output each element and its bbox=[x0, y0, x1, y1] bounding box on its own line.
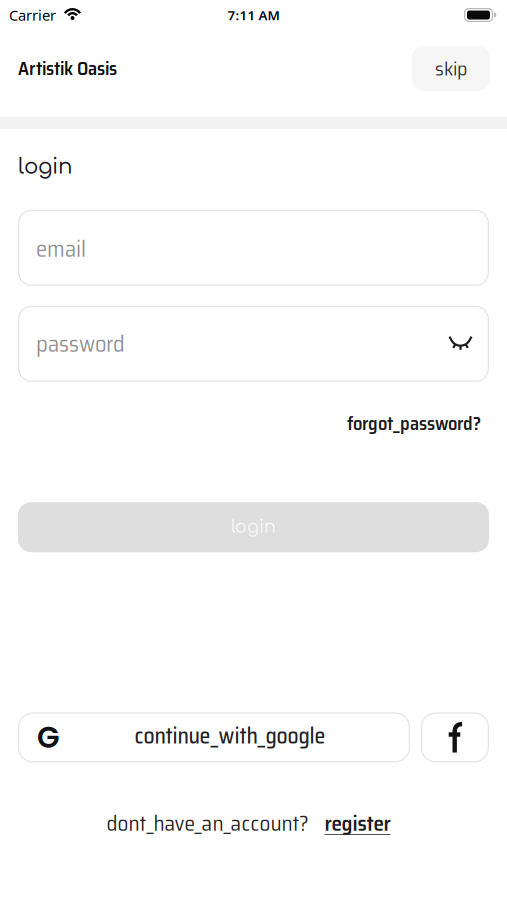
staticText: email bbox=[36, 231, 86, 267]
staticText: continue_with_google bbox=[134, 719, 325, 753]
button[interactable]: forgot_password? bbox=[347, 409, 481, 438]
staticText: password bbox=[36, 326, 125, 362]
staticText: skip bbox=[435, 53, 467, 84]
staticText: Artistik Oasis bbox=[18, 54, 117, 83]
button[interactable]: login bbox=[18, 502, 489, 552]
button[interactable]: skip bbox=[412, 46, 490, 91]
button[interactable]: G bbox=[18, 712, 410, 762]
staticText: login bbox=[231, 517, 276, 537]
button[interactable]: Show password bbox=[450, 337, 471, 351]
button[interactable]: register bbox=[324, 806, 390, 840]
staticText: forgot_password? bbox=[347, 409, 481, 438]
button[interactable]: Continue with Facebook bbox=[421, 712, 489, 762]
staticText: register bbox=[324, 806, 390, 840]
staticText: 7:11 AM bbox=[227, 6, 279, 24]
staticText: Carrier bbox=[9, 5, 56, 25]
staticText: login bbox=[18, 155, 72, 179]
staticText: dont_have_an_account? bbox=[106, 806, 308, 840]
staticText: G bbox=[37, 717, 60, 758]
